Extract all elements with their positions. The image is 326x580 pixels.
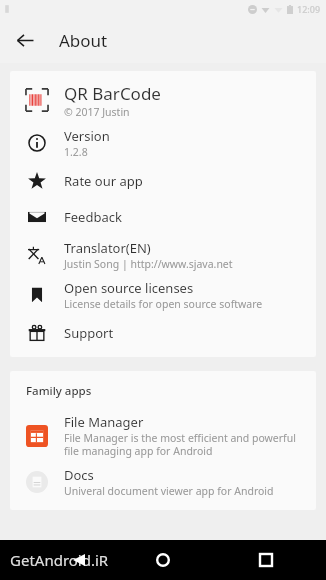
staticText: Open source licenses bbox=[64, 279, 194, 297]
staticText: File Manager bbox=[64, 413, 144, 431]
button[interactable]: Back bbox=[62, 543, 96, 577]
button[interactable]: Feedback bbox=[10, 199, 316, 235]
staticText: Translator(EN) bbox=[64, 239, 151, 257]
button[interactable]: Version bbox=[10, 123, 316, 163]
staticText: About bbox=[59, 29, 108, 52]
staticText: Support bbox=[64, 324, 114, 342]
staticText: GetAndroid.iR bbox=[10, 550, 109, 570]
button[interactable]: Back bbox=[8, 23, 42, 57]
button[interactable]: Home bbox=[145, 542, 181, 578]
staticText: Version bbox=[64, 127, 110, 145]
staticText: File Manager is the most efficient and p… bbox=[64, 431, 296, 458]
staticText: Feedback bbox=[64, 208, 122, 226]
button[interactable]: QR BarCode bbox=[10, 77, 316, 123]
staticText: Justin Song | http://www.sjava.net bbox=[64, 257, 233, 271]
button[interactable]: Recent apps bbox=[248, 542, 284, 578]
staticText: Rate our app bbox=[64, 172, 143, 190]
button[interactable]: Translator(EN) bbox=[10, 235, 316, 275]
staticText: License details for open source software bbox=[64, 297, 263, 311]
staticText: QR BarCode bbox=[64, 82, 161, 105]
button[interactable]: Rate our app bbox=[10, 163, 316, 199]
button[interactable]: Support bbox=[10, 315, 316, 351]
staticText: 1.2.8 bbox=[64, 145, 88, 159]
button[interactable]: File Manager bbox=[10, 409, 316, 462]
staticText: Univeral document viewer app for Android bbox=[64, 484, 274, 498]
staticText: Family apps bbox=[26, 383, 92, 399]
staticText: © 2017 Justin bbox=[64, 105, 130, 119]
staticText: 12:09 bbox=[297, 3, 321, 15]
staticText: Docs bbox=[64, 466, 94, 484]
button[interactable]: Docs bbox=[10, 462, 316, 502]
button[interactable]: Open source licenses bbox=[10, 275, 316, 315]
